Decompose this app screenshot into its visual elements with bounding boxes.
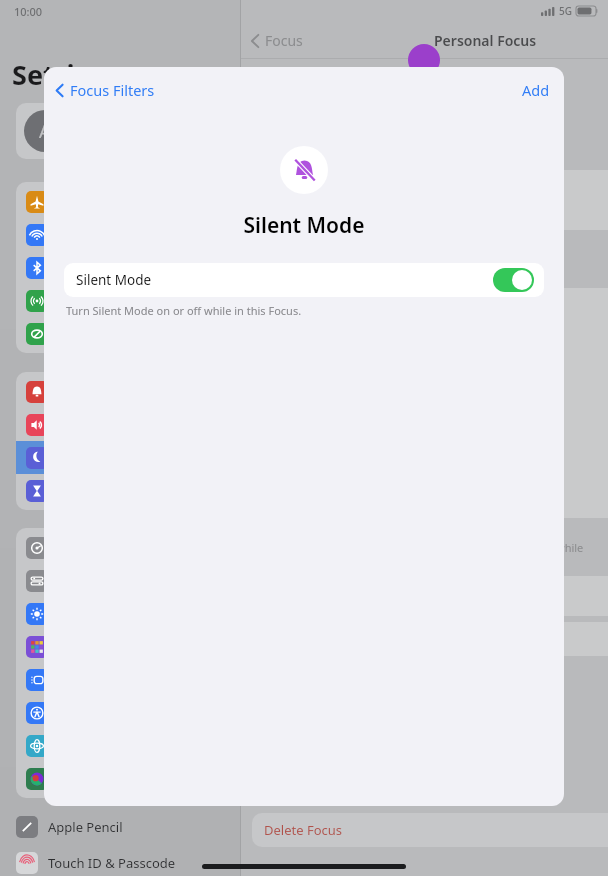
button[interactable] <box>16 317 224 350</box>
button[interactable]: Silent Mode <box>64 263 544 297</box>
button[interactable] <box>16 441 224 474</box>
staticText: Silent Mode <box>76 271 152 289</box>
staticText: Focus Filters <box>70 80 155 100</box>
staticText: while <box>556 540 584 555</box>
staticText: Personal Focus <box>434 31 537 50</box>
button[interactable]: Delete Focus <box>252 813 608 847</box>
staticText: Delete Focus <box>264 821 343 839</box>
button[interactable] <box>16 597 224 630</box>
button[interactable] <box>16 474 224 507</box>
button[interactable] <box>16 185 224 218</box>
button[interactable]: Focus Filters <box>54 80 155 100</box>
staticText: Touch ID & Passcode <box>48 854 176 872</box>
button[interactable] <box>16 375 224 408</box>
button[interactable] <box>16 251 224 284</box>
button[interactable] <box>16 564 224 597</box>
staticText: Settings <box>12 56 123 93</box>
staticText: Silent Mode <box>243 211 365 240</box>
button[interactable]: Touch ID & Passcode <box>16 846 224 876</box>
staticText: 5G <box>559 4 572 18</box>
button[interactable] <box>16 408 224 441</box>
button[interactable]: Focus <box>249 31 303 50</box>
staticText: Turn Silent Mode on or off while in this… <box>66 303 302 318</box>
button[interactable]: Apple Pencil <box>16 810 224 844</box>
button[interactable] <box>16 284 224 317</box>
button[interactable] <box>16 531 224 564</box>
staticText: Add <box>522 80 550 100</box>
staticText: Apple Pencil <box>48 818 123 836</box>
button[interactable] <box>16 218 224 251</box>
staticText: A <box>39 119 51 144</box>
button[interactable] <box>16 663 224 696</box>
button[interactable]: Silent Mode toggle, on <box>493 268 534 292</box>
button[interactable]: Add <box>518 76 554 104</box>
button[interactable] <box>16 696 224 729</box>
button[interactable] <box>16 729 224 762</box>
button[interactable] <box>16 762 224 795</box>
staticText: 10:00 <box>14 4 43 19</box>
staticText: Focus <box>265 31 303 50</box>
button[interactable] <box>16 630 224 663</box>
